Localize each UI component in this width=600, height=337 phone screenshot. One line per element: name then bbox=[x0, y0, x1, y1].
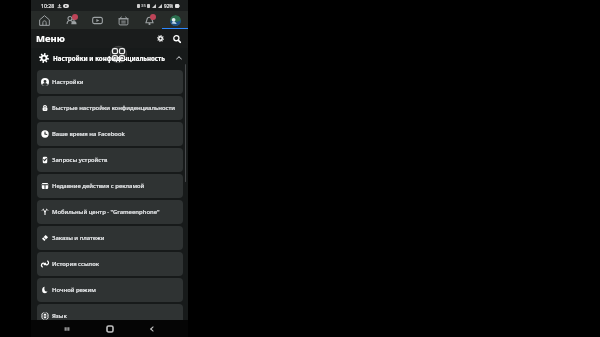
button[interactable]: Ночной режим bbox=[37, 278, 183, 302]
button[interactable]: Marketplace bbox=[110, 11, 136, 29]
staticText: Настройки bbox=[52, 78, 84, 86]
button[interactable]: Assistive menu bbox=[110, 46, 127, 63]
button[interactable]: Настройки bbox=[37, 70, 183, 94]
button[interactable]: Friend requests bbox=[58, 11, 84, 29]
staticText: Запросы устройств bbox=[52, 156, 108, 164]
button[interactable]: Home bbox=[101, 320, 119, 337]
button[interactable]: Watch bbox=[84, 11, 110, 29]
staticText: Ночной режим bbox=[52, 286, 96, 294]
staticText: История ссылок bbox=[52, 260, 99, 268]
button[interactable]: Back bbox=[143, 320, 161, 337]
button[interactable]: Home bbox=[31, 11, 58, 29]
staticText: 35 bbox=[141, 3, 146, 9]
button[interactable]: Настройки и конфиденциальность bbox=[31, 47, 188, 69]
button[interactable]: Мобильный центр · "Grameenphone" bbox=[37, 200, 183, 224]
button[interactable]: Profile menu bbox=[162, 11, 188, 29]
staticText: 92% bbox=[164, 3, 174, 9]
staticText: Заказы и платежи bbox=[52, 234, 105, 242]
button[interactable]: Недавние действия с рекламой bbox=[37, 174, 183, 198]
staticText: Мобильный центр · "Grameenphone" bbox=[52, 208, 160, 216]
button[interactable]: История ссылок bbox=[37, 252, 183, 276]
staticText: Язык bbox=[52, 312, 67, 320]
button[interactable]: Язык bbox=[37, 304, 183, 328]
staticText: Ваше время на Facebook bbox=[52, 130, 125, 138]
button[interactable]: Search bbox=[170, 32, 183, 45]
staticText: Меню bbox=[36, 32, 65, 45]
button[interactable]: Заказы и платежи bbox=[37, 226, 183, 250]
button[interactable]: Запросы устройств bbox=[37, 148, 183, 172]
staticText: Настройки и конфиденциальность bbox=[53, 54, 165, 62]
staticText: Недавние действия с рекламой bbox=[52, 182, 145, 190]
button[interactable]: Recent apps bbox=[58, 320, 76, 337]
button[interactable]: Быстрые настройки конфиденциальности bbox=[37, 96, 183, 120]
button[interactable]: Notifications bbox=[136, 11, 162, 29]
button[interactable]: Settings bbox=[154, 32, 167, 45]
staticText: Быстрые настройки конфиденциальности bbox=[52, 104, 176, 112]
button[interactable]: Ваше время на Facebook bbox=[37, 122, 183, 146]
staticText: 10:28 bbox=[41, 2, 55, 9]
